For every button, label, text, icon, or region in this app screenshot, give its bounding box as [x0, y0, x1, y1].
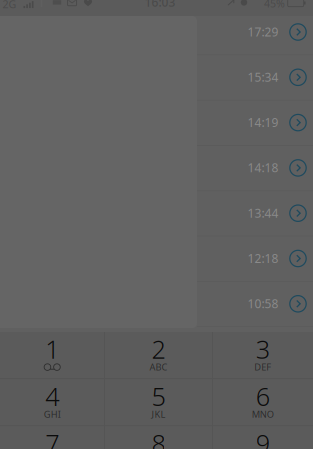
button[interactable]: 12:18	[197, 236, 313, 281]
button[interactable]: 3	[213, 332, 313, 378]
staticText: 7	[45, 426, 59, 449]
staticText: 45%	[264, 0, 285, 10]
button[interactable]: 2	[105, 332, 212, 378]
button[interactable]: 14:18	[197, 145, 313, 191]
button[interactable]: 15:34	[197, 55, 313, 100]
staticText: MNO	[252, 408, 274, 420]
button[interactable]: 4	[0, 379, 104, 425]
staticText: 17:29	[247, 24, 278, 40]
staticText: 10:58	[247, 296, 278, 311]
staticText: 4	[45, 379, 59, 413]
button[interactable]: 10:58	[197, 281, 313, 327]
staticText: 2	[151, 332, 165, 366]
staticText: 2G	[2, 0, 16, 11]
staticText: 15:34	[247, 69, 278, 85]
staticText: 9	[256, 426, 270, 449]
staticText: JKL	[151, 408, 165, 420]
button[interactable]: 8	[105, 426, 212, 449]
button[interactable]: 6	[213, 379, 313, 425]
staticText: 6	[256, 379, 270, 413]
staticText: 14:18	[247, 160, 278, 176]
staticText: 1	[45, 332, 59, 366]
staticText: ABC	[149, 361, 167, 373]
button[interactable]: 9	[213, 426, 313, 449]
button[interactable]: 5	[105, 379, 212, 425]
staticText: 12:18	[247, 250, 278, 266]
staticText: 8	[151, 426, 165, 449]
staticText: 13:44	[247, 205, 278, 221]
button[interactable]: 7	[0, 426, 104, 449]
staticText: 3	[256, 332, 270, 366]
staticText: 14:19	[247, 114, 278, 130]
staticText: 5	[151, 379, 165, 413]
button[interactable]: 17:29	[197, 10, 313, 55]
button[interactable]: 14:19	[197, 100, 313, 145]
staticText: DEF	[254, 361, 271, 373]
staticText: GHI	[44, 408, 61, 420]
staticText: 16:03	[144, 0, 175, 10]
button[interactable]: 1	[0, 332, 104, 378]
button[interactable]: 13:44	[197, 191, 313, 236]
